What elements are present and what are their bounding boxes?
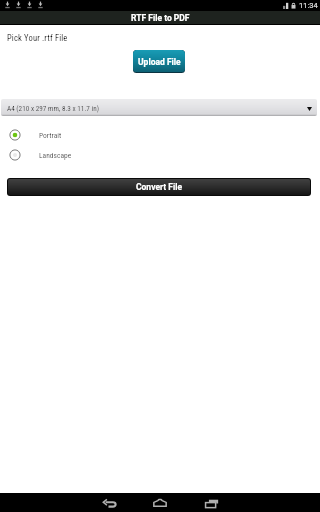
button[interactable]: Upload File: [133, 50, 185, 72]
staticText: Pick Your .rtf File: [7, 33, 68, 43]
staticText: Landscape: [39, 151, 72, 160]
staticText: Portrait: [39, 131, 62, 140]
button[interactable]: Convert File: [8, 179, 310, 195]
staticText: Upload File: [138, 57, 181, 67]
button[interactable]: Back: [100, 496, 118, 509]
staticText: Convert File: [136, 182, 183, 192]
button[interactable]: A4 (210 x 297 mm, 8.3 x 11.7 in): [1, 99, 317, 116]
button[interactable]: Portrait: [0, 125, 320, 145]
staticText: 11:34: [299, 1, 318, 10]
staticText: RTF File to PDF: [131, 13, 190, 23]
staticText: A4 (210 x 297 mm, 8.3 x 11.7 in): [7, 104, 99, 112]
button[interactable]: Landscape: [0, 145, 320, 165]
button[interactable]: Recent apps: [203, 496, 221, 509]
button[interactable]: Home: [151, 496, 169, 509]
